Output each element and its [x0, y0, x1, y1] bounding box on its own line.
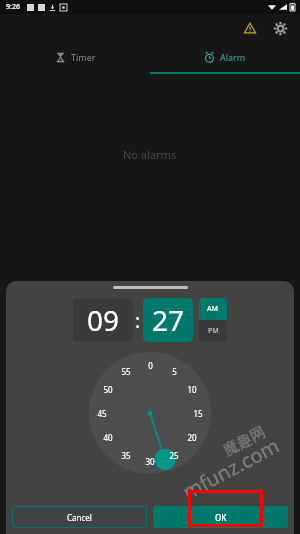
staticText: 9:26 [6, 2, 20, 12]
staticText: : [135, 307, 141, 334]
button[interactable]: Alarm [150, 42, 300, 72]
staticText: 55 [121, 366, 131, 377]
staticText: 0 [148, 360, 153, 371]
staticText: Timer [71, 51, 96, 63]
staticText: PM [208, 326, 219, 336]
button[interactable]: PM [199, 320, 227, 342]
button[interactable]: Warning [238, 16, 262, 40]
staticText: 40 [103, 432, 113, 443]
button[interactable]: 09 [73, 298, 133, 342]
staticText: 25 [169, 450, 179, 461]
button[interactable]: Cancel [12, 506, 147, 528]
staticText: 15 [193, 408, 203, 419]
staticText: 魔趣网 [220, 422, 269, 460]
staticText: 30 [145, 456, 155, 467]
staticText: Cancel [67, 512, 92, 523]
button[interactable]: Minute dial [89, 352, 211, 474]
staticText: 27 [152, 301, 185, 339]
staticText: 5 [172, 366, 177, 377]
staticText: AM [207, 304, 219, 314]
staticText: 09 [87, 301, 120, 339]
staticText: 50 [103, 384, 113, 395]
staticText: 10 [187, 384, 197, 395]
staticText: 20 [187, 432, 197, 443]
staticText: OK [215, 512, 227, 523]
staticText: 35 [121, 450, 131, 461]
button[interactable]: Settings [268, 16, 292, 40]
staticText: No alarms [123, 147, 177, 162]
staticText: 45 [97, 408, 107, 419]
button[interactable]: OK [153, 506, 288, 528]
button[interactable]: Timer [0, 42, 150, 72]
staticText: Alarm [220, 51, 246, 63]
staticText: mfunz.com [178, 432, 284, 505]
button[interactable]: 27 [143, 298, 193, 342]
button[interactable]: AM [199, 298, 227, 320]
